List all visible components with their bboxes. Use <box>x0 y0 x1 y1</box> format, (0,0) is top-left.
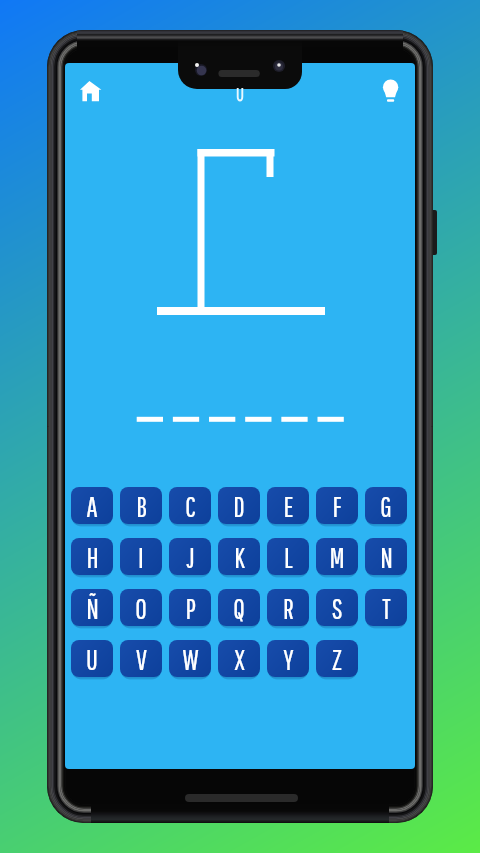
staticText: T <box>382 592 391 624</box>
staticText: F <box>332 490 342 522</box>
staticText: B <box>136 490 147 522</box>
staticText: V <box>136 643 147 675</box>
button[interactable]: E <box>267 487 309 524</box>
button[interactable]: H <box>71 538 113 575</box>
button[interactable]: L <box>267 538 309 575</box>
staticText: P <box>185 592 196 624</box>
staticText: E <box>283 490 294 522</box>
button[interactable]: Z <box>316 640 358 677</box>
button[interactable]: W <box>169 640 211 677</box>
button[interactable]: P <box>169 589 211 626</box>
staticText: D <box>233 490 245 522</box>
button[interactable]: Q <box>218 589 260 626</box>
button[interactable]: T <box>365 589 407 626</box>
button[interactable]: G <box>365 487 407 524</box>
staticText: I <box>138 541 144 573</box>
button[interactable]: M <box>316 538 358 575</box>
button[interactable]: D <box>218 487 260 524</box>
staticText: Q <box>233 592 245 624</box>
button[interactable]: N <box>365 538 407 575</box>
button[interactable]: C <box>169 487 211 524</box>
button[interactable]: Y <box>267 640 309 677</box>
staticText: W <box>182 643 199 675</box>
button[interactable]: Ñ <box>71 589 113 626</box>
staticText: L <box>284 541 293 573</box>
staticText: A <box>86 490 98 522</box>
button[interactable]: V <box>120 640 162 677</box>
staticText: J <box>186 541 195 573</box>
button[interactable]: K <box>218 538 260 575</box>
button[interactable]: O <box>120 589 162 626</box>
staticText: O <box>135 592 147 624</box>
staticText: Z <box>332 643 342 675</box>
button[interactable]: U <box>71 640 113 677</box>
staticText: U <box>86 643 98 675</box>
button[interactable]: A <box>71 487 113 524</box>
button[interactable]: I <box>120 538 162 575</box>
button[interactable]: R <box>267 589 309 626</box>
staticText: R <box>283 592 294 624</box>
button[interactable]: F <box>316 487 358 524</box>
button[interactable]: Home <box>72 74 108 108</box>
staticText: S <box>331 592 343 624</box>
staticText: H <box>86 541 99 573</box>
staticText: Ñ <box>86 592 99 624</box>
button[interactable]: S <box>316 589 358 626</box>
staticText: X <box>234 643 245 675</box>
staticText: C <box>185 490 196 522</box>
button[interactable]: Hint <box>373 74 405 108</box>
staticText: K <box>234 541 245 573</box>
staticText: M <box>329 541 345 573</box>
staticText: Y <box>283 643 294 675</box>
staticText: N <box>380 541 393 573</box>
button[interactable]: X <box>218 640 260 677</box>
button[interactable]: B <box>120 487 162 524</box>
button[interactable]: J <box>169 538 211 575</box>
staticText: G <box>380 490 392 522</box>
